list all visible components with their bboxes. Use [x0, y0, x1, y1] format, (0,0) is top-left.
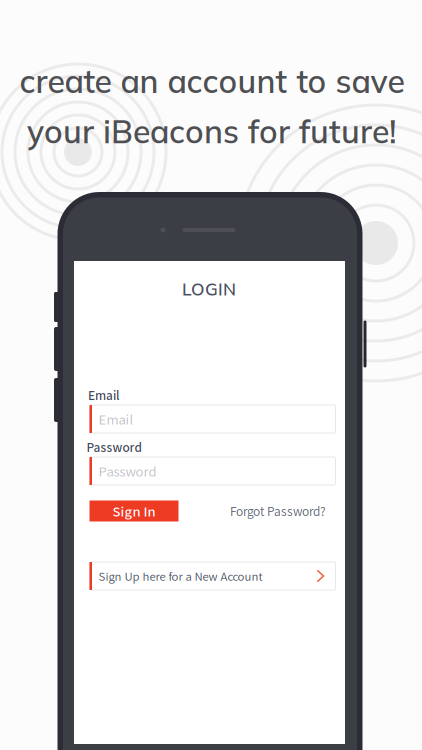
staticText: your iBeacons for future! — [27, 111, 397, 151]
button[interactable]: Forgot Password? — [230, 502, 326, 520]
staticText: LOGIN — [182, 278, 236, 300]
staticText: Sign Up here for a New Account — [98, 568, 262, 584]
staticText: Sign In — [112, 501, 155, 521]
staticText: Password — [98, 461, 156, 481]
staticText: Email — [98, 409, 133, 429]
button[interactable]: Sign In — [89, 500, 178, 521]
staticText: Forgot Password? — [230, 502, 326, 520]
button[interactable]: Sign Up here for a New Account — [89, 562, 335, 590]
staticText: create an account to save — [19, 61, 404, 101]
staticText: Password — [86, 438, 141, 456]
staticText: Email — [88, 386, 120, 404]
